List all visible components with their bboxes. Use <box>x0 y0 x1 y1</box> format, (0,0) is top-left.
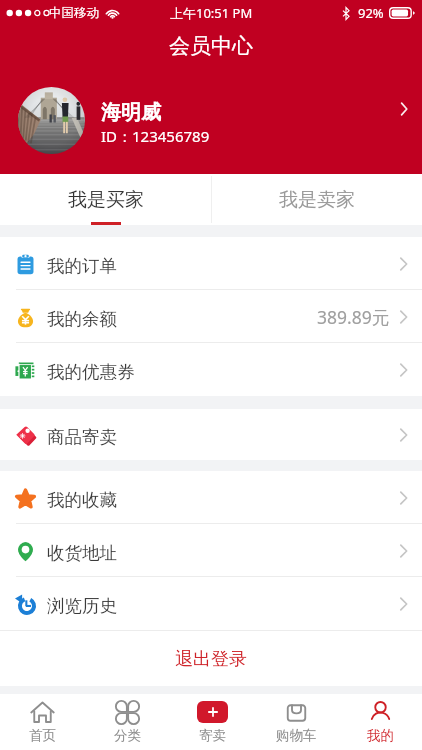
staticText: 我的优惠券 <box>47 361 135 383</box>
staticText: 上午10:51 PM <box>170 4 253 22</box>
staticText: 首页 <box>29 727 56 744</box>
button[interactable]: 首页 <box>0 694 85 750</box>
button[interactable]: 退出登录 <box>0 631 422 686</box>
button[interactable]: 我的订单 <box>0 237 422 290</box>
button[interactable]: 我是卖家 <box>211 174 422 225</box>
button[interactable]: 收货地址 <box>0 524 422 577</box>
button[interactable]: 浏览历史 <box>0 577 422 630</box>
staticText: 分类 <box>114 727 141 744</box>
button[interactable]: 我的优惠券 <box>0 343 422 396</box>
other: 查看个人资料 <box>400 102 408 116</box>
staticText: 我的 <box>367 727 394 744</box>
staticText: ID：123456789 <box>101 126 210 146</box>
staticText: 商品寄卖 <box>47 426 117 448</box>
staticText: 我的余额 <box>47 308 117 330</box>
staticText: 92% <box>358 4 384 22</box>
staticText: 我的收藏 <box>47 489 117 511</box>
staticText: 中国移动 <box>49 5 99 21</box>
staticText: 寄卖 <box>199 727 226 744</box>
staticText: 浏览历史 <box>47 595 117 617</box>
button[interactable]: 寄卖 <box>170 694 254 750</box>
button[interactable]: 分类 <box>85 694 170 750</box>
button[interactable]: 海明威 <box>0 66 422 174</box>
staticText: 389.89元 <box>317 305 390 329</box>
staticText: 我是买家 <box>68 188 144 212</box>
button[interactable]: 购物车 <box>254 694 338 750</box>
staticText: 我是卖家 <box>279 188 355 212</box>
staticText: 海明威 <box>101 100 161 125</box>
button[interactable]: 商品寄卖 <box>0 409 422 460</box>
button[interactable]: 我的收藏 <box>0 471 422 524</box>
staticText: 退出登录 <box>175 648 247 671</box>
button[interactable]: 我的 <box>338 694 422 750</box>
button[interactable]: 我的余额 <box>0 290 422 343</box>
staticText: 我的订单 <box>47 255 117 277</box>
staticText: 会员中心 <box>0 33 422 59</box>
button[interactable]: 我是买家 <box>0 174 211 225</box>
staticText: 收货地址 <box>47 542 117 564</box>
other: 寄卖 <box>197 701 228 723</box>
staticText: 购物车 <box>276 727 317 744</box>
